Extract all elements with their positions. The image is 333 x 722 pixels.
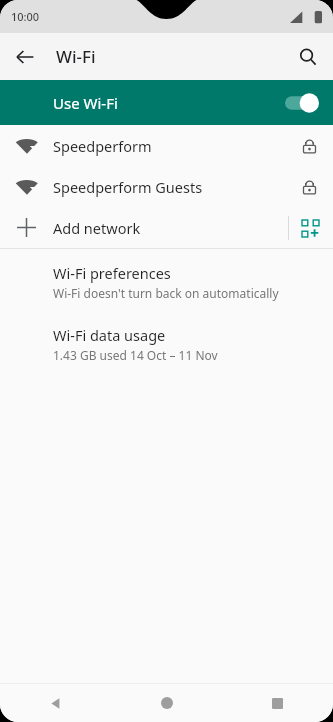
button[interactable]: Recent apps bbox=[222, 684, 333, 722]
button[interactable]: Home bbox=[111, 684, 222, 722]
staticText: Wi-Fi bbox=[56, 45, 96, 68]
button[interactable]: Speedperform Guests bbox=[0, 166, 333, 207]
button[interactable]: Speedperform bbox=[0, 125, 333, 166]
button[interactable]: Search bbox=[289, 38, 327, 76]
staticText: Speedperform Guests bbox=[53, 177, 203, 197]
staticText: Wi-Fi data usage bbox=[53, 325, 166, 345]
staticText: Speedperform bbox=[53, 136, 152, 156]
button[interactable]: Back bbox=[6, 38, 44, 76]
button[interactable]: Wi-Fi preferences bbox=[0, 258, 333, 306]
button[interactable]: Use Wi-Fi bbox=[0, 80, 333, 125]
staticText: Use Wi-Fi bbox=[53, 93, 118, 113]
button[interactable]: Wi-Fi data usage bbox=[0, 320, 333, 368]
staticText: Wi-Fi doesn't turn back on automatically bbox=[53, 285, 279, 301]
button[interactable]: Add network bbox=[0, 207, 333, 248]
staticText: 1.43 GB used 14 Oct – 11 Nov bbox=[53, 347, 218, 363]
button[interactable]: Scan QR code bbox=[298, 216, 322, 240]
staticText: 10:00 bbox=[11, 9, 40, 24]
staticText: Add network bbox=[53, 218, 141, 238]
staticText: Wi-Fi preferences bbox=[53, 263, 171, 283]
button[interactable]: Back bbox=[0, 684, 111, 722]
